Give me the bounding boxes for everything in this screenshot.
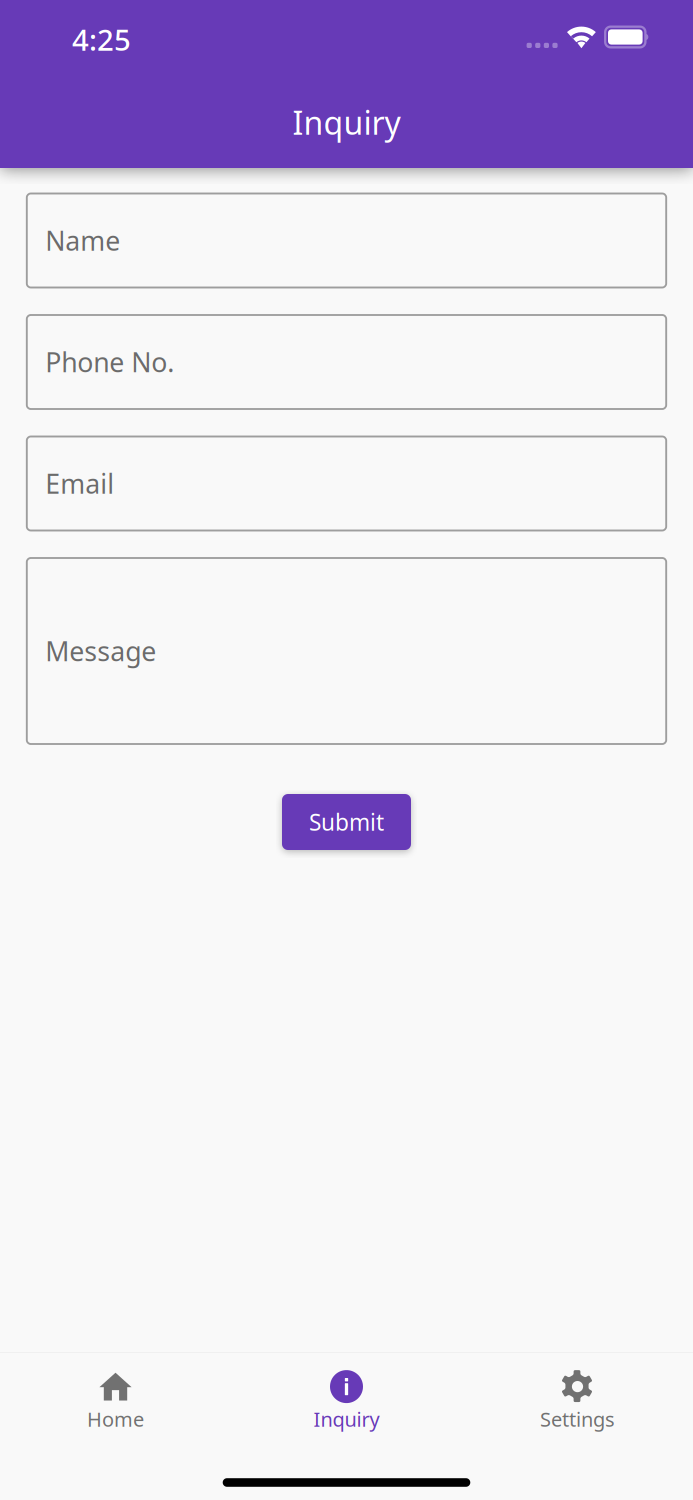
button[interactable]: Inquiry — [231, 1371, 462, 1432]
staticText: Phone No. — [45, 344, 174, 380]
button[interactable]: Settings — [462, 1371, 693, 1432]
button[interactable]: Name — [27, 193, 666, 287]
button[interactable]: Email — [27, 436, 666, 530]
staticText: Submit — [309, 807, 384, 837]
staticText: Name — [45, 223, 120, 258]
staticText: 4:25 — [72, 20, 131, 59]
button[interactable]: Submit — [282, 794, 411, 850]
staticText: Inquiry — [292, 101, 400, 143]
staticText: Message — [45, 633, 156, 669]
staticText: Settings — [540, 1406, 615, 1432]
button[interactable]: Phone No. — [27, 315, 666, 409]
staticText: Home — [87, 1406, 144, 1432]
staticText: Email — [45, 466, 114, 501]
staticText: Inquiry — [313, 1406, 379, 1432]
button[interactable]: Message — [27, 558, 666, 744]
button[interactable]: Home — [0, 1371, 231, 1432]
